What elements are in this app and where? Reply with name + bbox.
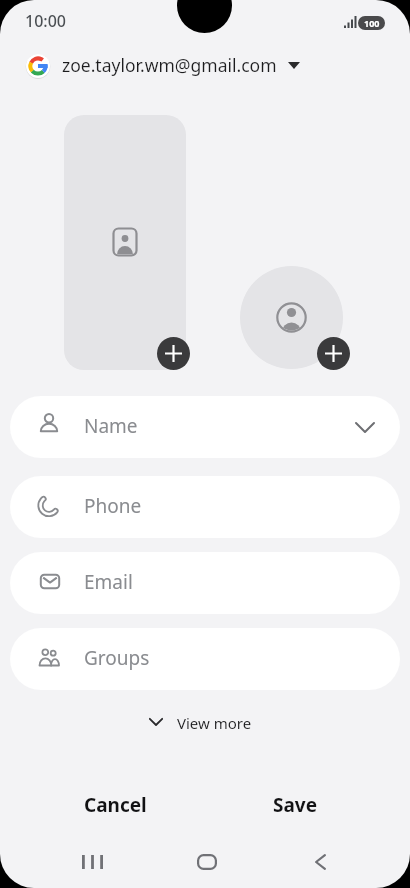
staticText: View more: [177, 713, 252, 733]
button[interactable]: Groups: [10, 628, 400, 690]
staticText: 10:00: [25, 10, 66, 32]
staticText: Save: [273, 792, 318, 818]
button[interactable]: Cancel: [55, 786, 175, 824]
staticText: Groups: [84, 645, 150, 671]
button[interactable]: Phone: [10, 476, 400, 538]
button[interactable]: [62, 842, 122, 882]
button[interactable]: [240, 266, 343, 369]
staticText: Email: [84, 569, 133, 595]
button[interactable]: Name: [10, 396, 400, 458]
button[interactable]: View more: [135, 705, 265, 739]
staticText: Phone: [84, 493, 142, 519]
staticText: Name: [84, 413, 138, 439]
staticText: zoe.taylor.wm@gmail.com: [62, 53, 277, 77]
button[interactable]: [177, 842, 237, 882]
button[interactable]: [290, 842, 350, 882]
staticText: 100: [364, 17, 380, 29]
button[interactable]: Email: [10, 552, 400, 614]
button[interactable]: zoe.taylor.wm@gmail.com: [16, 46, 312, 86]
staticText: Cancel: [84, 792, 147, 818]
button[interactable]: Save: [235, 786, 355, 824]
button[interactable]: [157, 337, 190, 370]
button[interactable]: [317, 337, 350, 370]
button[interactable]: [64, 115, 186, 370]
